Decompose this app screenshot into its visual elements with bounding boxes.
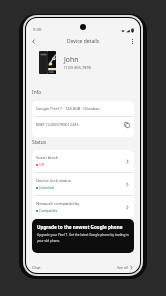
button[interactable]: Google Pixel 7 · 128.8GB · Obsidian bbox=[32, 101, 134, 116]
staticText: IMEI 123456789012345 bbox=[36, 122, 79, 127]
button[interactable]: Back bbox=[28, 36, 39, 47]
staticText: Upgrade to the newest Google phone bbox=[37, 224, 123, 230]
staticText: Compatible bbox=[39, 208, 58, 213]
staticText: Off bbox=[39, 162, 44, 167]
button[interactable]: More options bbox=[127, 36, 138, 47]
button[interactable]: IMEI 123456789012345 bbox=[32, 117, 134, 137]
staticText: Upgrade your Pixel 7. Get the latest Goo… bbox=[37, 233, 129, 243]
button[interactable]: Upgrade to the newest Google phone bbox=[32, 219, 134, 253]
staticText: Device lock status bbox=[36, 178, 71, 184]
staticText: 9:30 bbox=[33, 27, 42, 33]
staticText: (123) 456-7890 bbox=[64, 65, 91, 70]
staticText: Unlocked bbox=[39, 185, 54, 190]
button[interactable]: See all bbox=[117, 265, 134, 270]
staticText: John bbox=[64, 55, 79, 64]
staticText: Google Pixel 7 · 128.8GB · Obsidian bbox=[36, 106, 100, 111]
staticText: Scam block bbox=[36, 155, 59, 161]
button[interactable]: Device lock status bbox=[32, 173, 134, 195]
button[interactable]: Scam block bbox=[32, 150, 134, 172]
button[interactable]: Network compatibility bbox=[32, 196, 134, 218]
staticText: See all bbox=[117, 265, 128, 270]
staticText: Chat bbox=[32, 265, 41, 270]
staticText: Status bbox=[32, 139, 47, 146]
staticText: Device details bbox=[67, 38, 100, 45]
staticText: Network compatibility bbox=[36, 201, 80, 207]
staticText: Info bbox=[32, 89, 42, 96]
